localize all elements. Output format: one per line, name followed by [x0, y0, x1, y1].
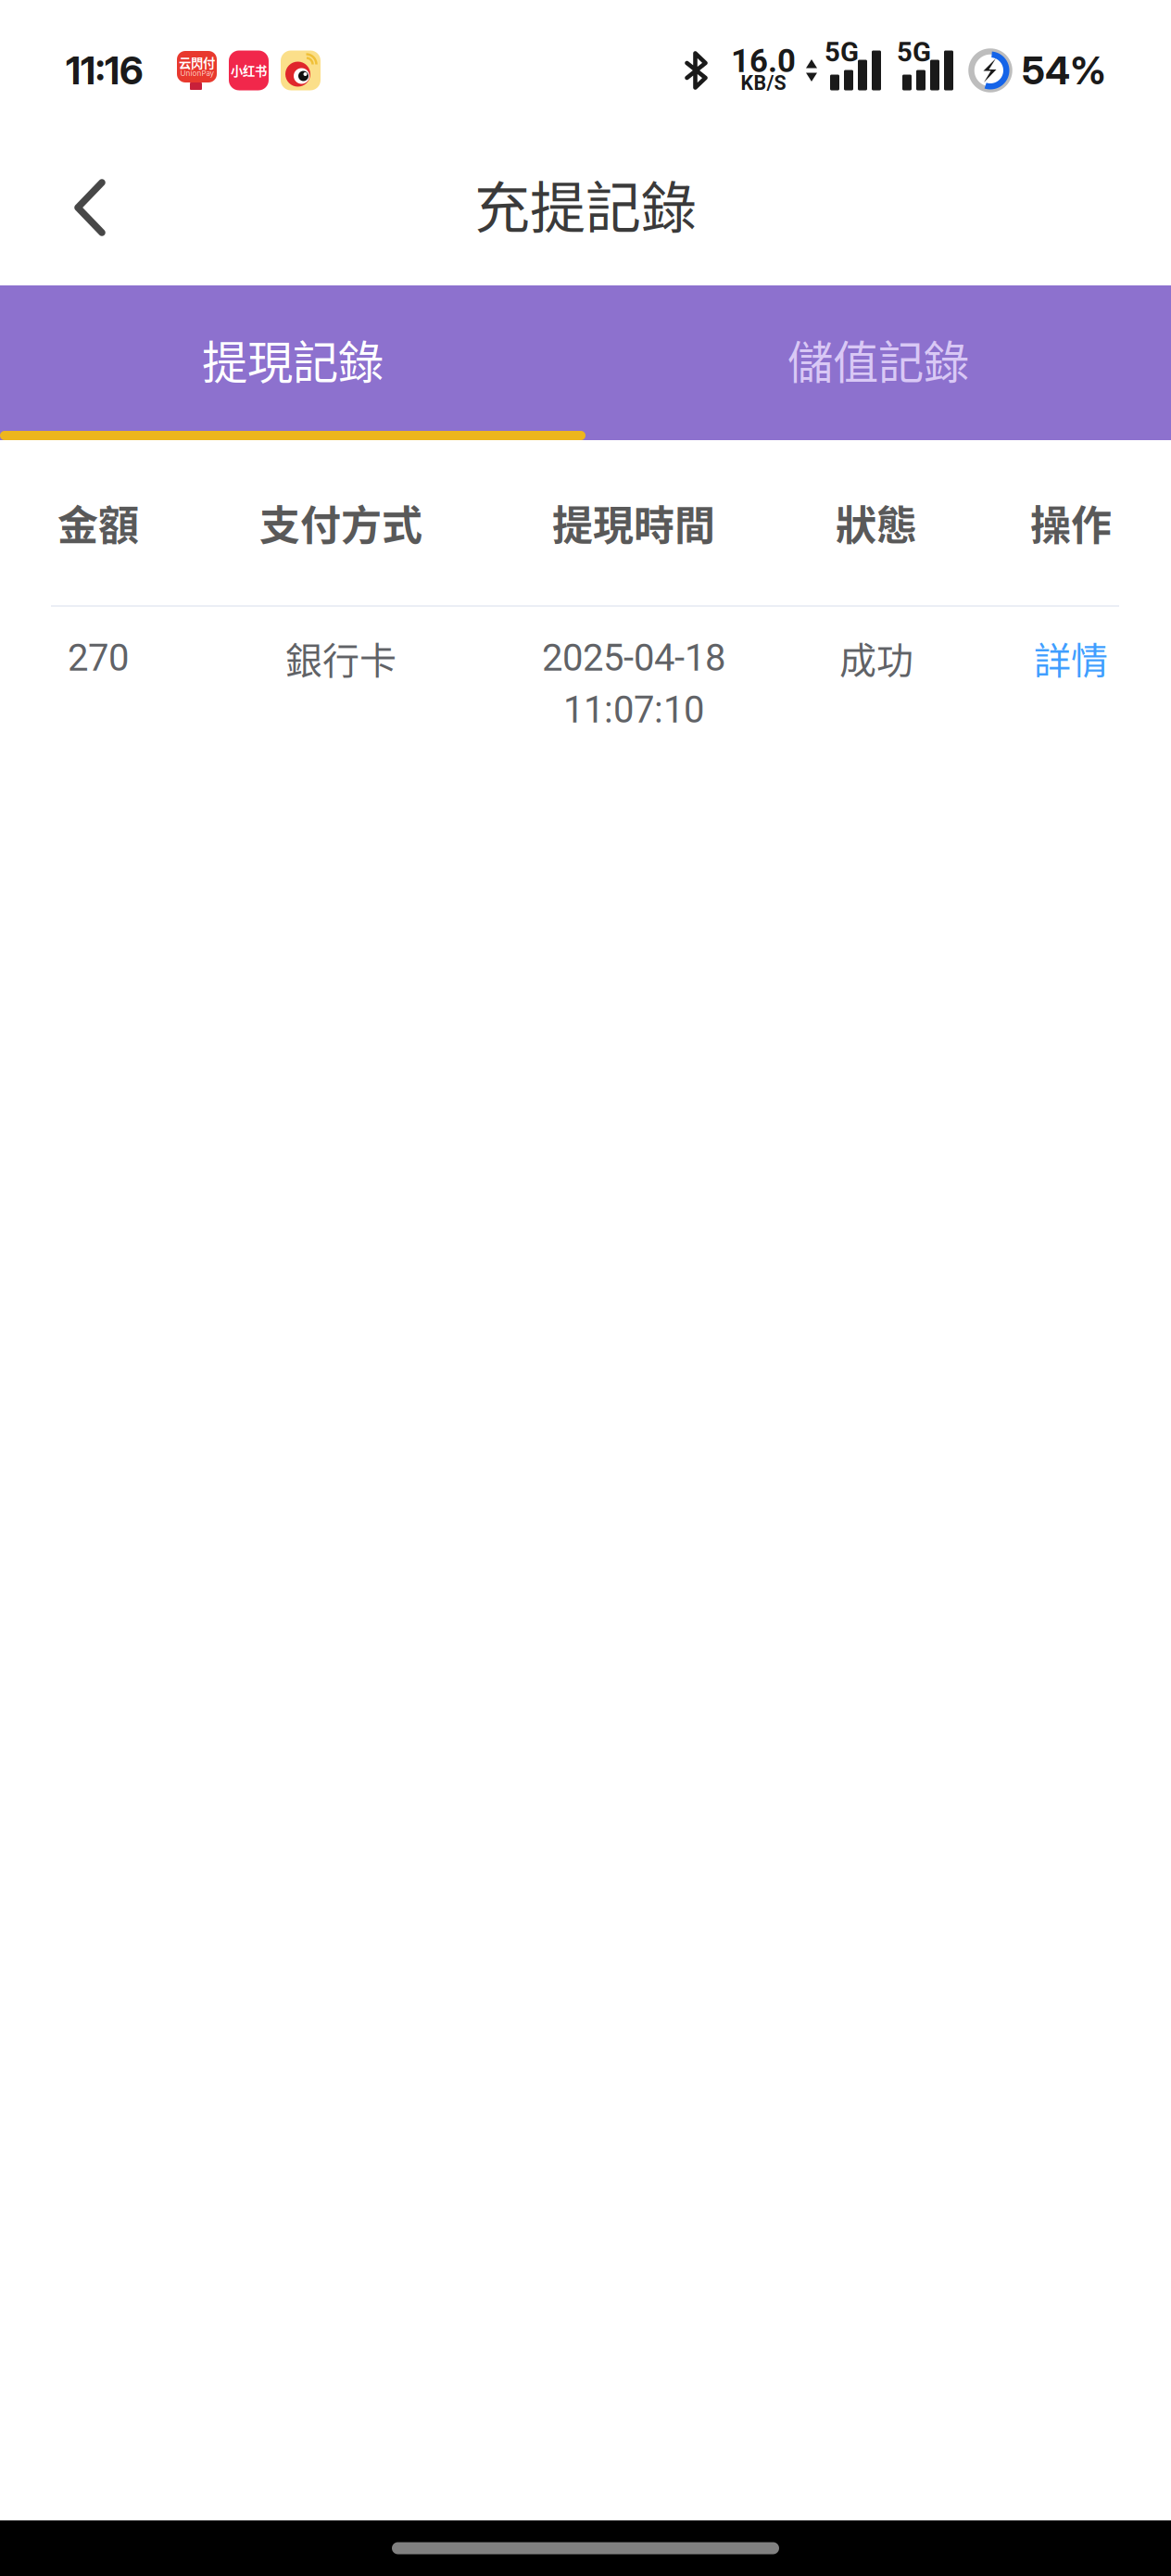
staticText: 16.0	[731, 42, 796, 80]
staticText: KB/S	[741, 72, 786, 95]
staticText: 詳情	[1034, 631, 1108, 685]
staticText: 5G	[897, 36, 931, 68]
staticText: 小红书	[231, 61, 267, 79]
staticText: 金額	[57, 493, 139, 552]
staticText: 充提記錄	[474, 164, 697, 244]
staticText: 270	[68, 636, 129, 680]
staticText: 提現時間	[552, 493, 715, 552]
button[interactable]: 儲值記錄	[585, 285, 1171, 440]
staticText: 5G	[825, 36, 859, 68]
staticText: 11:16	[66, 47, 144, 94]
staticText: 支付方式	[259, 493, 422, 552]
staticText: 操作	[1030, 493, 1112, 552]
staticText: 銀行卡	[285, 631, 397, 685]
staticText: 2025-04-18	[542, 636, 725, 680]
staticText: 云閃付	[179, 54, 215, 71]
staticText: 狀態	[836, 493, 917, 552]
button[interactable]: 提現記錄	[0, 285, 585, 440]
button[interactable]: Back	[0, 130, 180, 285]
staticText: 提現記錄	[202, 326, 384, 392]
staticText: 11:07:10	[563, 688, 704, 732]
staticText: 54%	[1022, 47, 1106, 94]
staticText: 儲值記錄	[787, 326, 969, 392]
button[interactable]: 詳情	[971, 638, 1171, 677]
staticText: UnionPay	[180, 69, 214, 78]
staticText: 成功	[839, 631, 913, 685]
